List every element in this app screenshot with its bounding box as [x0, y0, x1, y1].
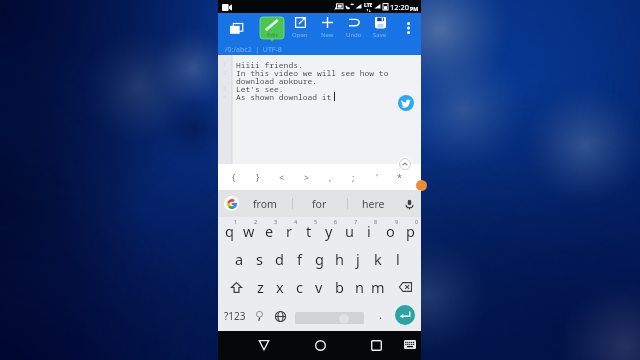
staticText: 1	[223, 61, 227, 68]
button[interactable]: {	[222, 164, 246, 190]
staticText: q	[225, 221, 234, 241]
staticText: y	[325, 221, 333, 241]
button[interactable]: ,	[318, 164, 342, 190]
button[interactable]: Space	[295, 303, 364, 329]
button[interactable]: Open	[289, 17, 311, 39]
staticText: r	[286, 221, 292, 241]
staticText: g	[315, 249, 324, 269]
staticText: 2	[254, 218, 258, 225]
staticText: 4	[223, 93, 227, 100]
staticText: Save	[373, 31, 387, 39]
staticText: 3	[274, 218, 278, 225]
button[interactable]: r	[279, 217, 299, 245]
button[interactable]: c	[289, 273, 309, 301]
button[interactable]: Hide keyboard	[253, 334, 275, 356]
button[interactable]: d	[269, 245, 289, 273]
button[interactable]: k	[368, 245, 388, 273]
staticText: Let's see.	[236, 84, 284, 92]
staticText: Hiiii friends.	[236, 60, 303, 68]
button[interactable]: i	[359, 217, 379, 245]
button[interactable]: here	[349, 190, 397, 217]
staticText: download apkpure.	[236, 76, 317, 84]
button[interactable]: Twitter	[398, 95, 414, 111]
button[interactable]: Enter	[395, 305, 415, 325]
button[interactable]: Home	[309, 334, 331, 356]
staticText: >	[304, 171, 310, 183]
staticText: .	[379, 307, 382, 322]
staticText: ?123	[224, 309, 246, 323]
staticText: *	[397, 171, 402, 183]
button[interactable]: Change language	[270, 301, 290, 331]
staticText: n	[355, 277, 364, 297]
staticText: e	[265, 221, 274, 241]
button[interactable]: e	[259, 217, 279, 245]
button[interactable]: Edit	[260, 17, 284, 42]
staticText: /0:/abc2 | UTF-8	[225, 45, 282, 55]
button[interactable]: y	[319, 217, 339, 245]
staticText: i	[367, 221, 371, 241]
button[interactable]: j	[348, 245, 368, 273]
button[interactable]: Shift	[223, 273, 249, 301]
staticText: v	[315, 277, 323, 297]
button[interactable]: v	[309, 273, 329, 301]
button[interactable]: a	[229, 245, 249, 273]
staticText: In this video we will see how to	[236, 68, 389, 76]
staticText: u	[345, 221, 354, 241]
staticText: {	[232, 171, 236, 183]
staticText: f	[297, 249, 302, 269]
staticText: b	[335, 277, 344, 297]
button[interactable]: x	[270, 273, 290, 301]
button[interactable]: f	[289, 245, 309, 273]
staticText: 8	[374, 218, 378, 225]
button[interactable]: w	[239, 217, 259, 245]
staticText: New	[321, 31, 334, 39]
button[interactable]: t	[299, 217, 319, 245]
staticText: h	[335, 249, 344, 269]
button[interactable]: Emoji	[249, 301, 269, 331]
button[interactable]: Recent files	[225, 17, 247, 39]
button[interactable]: m	[368, 273, 388, 301]
button[interactable]: Expand keyboard	[398, 157, 412, 171]
button[interactable]: ;	[341, 164, 365, 190]
button[interactable]: o	[380, 217, 400, 245]
button[interactable]: g	[309, 245, 329, 273]
button[interactable]: '	[365, 164, 389, 190]
staticText: 4	[294, 218, 298, 225]
button[interactable]: Recent apps	[365, 334, 387, 356]
button[interactable]: }	[246, 164, 270, 190]
staticText: t	[306, 221, 312, 241]
staticText: 2	[223, 69, 227, 76]
staticText: 7	[354, 218, 358, 225]
button[interactable]: q	[219, 217, 239, 245]
staticText: PM	[410, 5, 419, 12]
button[interactable]: b	[329, 273, 349, 301]
button[interactable]: Save	[369, 17, 391, 39]
button[interactable]: s	[249, 245, 269, 273]
staticText: for	[312, 197, 327, 211]
staticText: d	[275, 249, 284, 269]
staticText: m	[371, 277, 385, 297]
button[interactable]: >	[295, 164, 319, 190]
button[interactable]: Backspace	[392, 273, 418, 301]
button[interactable]: from	[241, 190, 289, 217]
staticText: here	[362, 197, 385, 211]
button[interactable]: p	[400, 217, 420, 245]
button[interactable]: More options	[400, 17, 416, 39]
button[interactable]: .	[371, 301, 389, 331]
button[interactable]: <	[270, 164, 294, 190]
button[interactable]: Undo	[343, 17, 365, 39]
button[interactable]: Switch keyboard	[400, 334, 420, 354]
button[interactable]: u	[339, 217, 359, 245]
button[interactable]: Google	[224, 196, 239, 211]
button[interactable]: h	[329, 245, 349, 273]
button[interactable]: ?123	[221, 301, 249, 331]
button[interactable]: for	[295, 190, 343, 217]
button[interactable]: z	[250, 273, 270, 301]
button[interactable]: *	[387, 164, 411, 190]
button[interactable]: n	[349, 273, 369, 301]
staticText: ,	[329, 171, 332, 183]
button[interactable]: l	[388, 245, 408, 273]
button[interactable]: Voice input	[401, 196, 417, 212]
button[interactable]: New	[316, 17, 338, 39]
staticText: 12:20	[390, 2, 409, 12]
